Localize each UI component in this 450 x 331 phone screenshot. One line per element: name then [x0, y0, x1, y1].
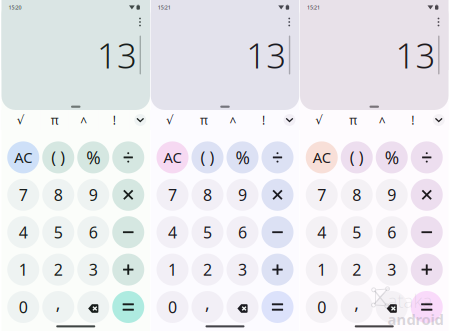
staticText: √ [315, 113, 323, 127]
button[interactable]: 5 [341, 216, 373, 248]
button[interactable]: 3 [77, 254, 109, 286]
button[interactable]: 4 [156, 216, 188, 248]
button[interactable]: 3 [376, 254, 408, 286]
button[interactable]: Show more functions [279, 110, 300, 130]
button[interactable]: 9 [376, 179, 408, 211]
staticText: 2 [352, 259, 361, 280]
button[interactable] [411, 216, 443, 248]
button[interactable] [77, 291, 109, 323]
staticText: 13 [396, 32, 436, 78]
button[interactable]: 0 [306, 291, 338, 323]
button[interactable] [261, 291, 293, 323]
button[interactable]: 8 [191, 179, 223, 211]
button[interactable] [261, 141, 293, 173]
button[interactable]: 7 [306, 179, 338, 211]
button[interactable]: 6 [376, 216, 408, 248]
button[interactable] [376, 291, 408, 323]
button[interactable]: % [77, 141, 109, 173]
button[interactable]: 8 [42, 179, 74, 211]
staticText: 4 [317, 222, 326, 243]
button[interactable]: ! [248, 110, 279, 130]
button[interactable]: 1 [306, 254, 338, 286]
button[interactable]: ^ [218, 110, 248, 130]
button[interactable]: 6 [77, 216, 109, 248]
button[interactable] [261, 254, 293, 286]
staticText: 3 [387, 259, 396, 280]
button[interactable] [112, 291, 144, 323]
button[interactable] [411, 179, 443, 211]
button[interactable]: ^ [69, 110, 99, 130]
button[interactable] [112, 254, 144, 286]
button[interactable]: π [41, 110, 69, 130]
staticText: 1 [317, 259, 326, 280]
button[interactable]: ! [397, 110, 428, 130]
button[interactable]: % [226, 141, 258, 173]
staticText: ataka [387, 288, 432, 313]
staticText: % [385, 146, 399, 169]
button[interactable]: 0 [7, 291, 39, 323]
button[interactable]: 4 [7, 216, 39, 248]
button[interactable]: ! [99, 110, 130, 130]
button[interactable]: √ [1, 110, 41, 130]
button[interactable]: 9 [226, 179, 258, 211]
button[interactable]: ( ) [341, 141, 373, 173]
button[interactable]: AC [306, 141, 338, 173]
button[interactable]: , [341, 291, 373, 323]
button[interactable]: More options [430, 15, 446, 29]
button[interactable] [112, 141, 144, 173]
button[interactable]: π [190, 110, 218, 130]
button[interactable]: ( ) [191, 141, 223, 173]
button[interactable]: 4 [306, 216, 338, 248]
button[interactable]: % [376, 141, 408, 173]
staticText: ^ [379, 114, 386, 129]
button[interactable]: 1 [7, 254, 39, 286]
staticText: 15:20 [8, 4, 21, 11]
button[interactable] [112, 179, 144, 211]
button[interactable]: π [339, 110, 367, 130]
button[interactable] [411, 254, 443, 286]
button[interactable]: , [191, 291, 223, 323]
button[interactable]: AC [156, 141, 188, 173]
button[interactable]: , [42, 291, 74, 323]
button[interactable]: 3 [226, 254, 258, 286]
button[interactable]: More options [132, 15, 148, 29]
staticText: 0 [168, 296, 177, 318]
button[interactable]: ^ [367, 110, 397, 130]
button[interactable]: More options [281, 15, 297, 29]
button[interactable] [112, 216, 144, 248]
staticText: 9 [89, 184, 98, 205]
button[interactable] [411, 141, 443, 173]
button[interactable]: √ [150, 110, 190, 130]
staticText: 7 [168, 184, 177, 205]
staticText: 15:21 [307, 4, 320, 11]
button[interactable]: 5 [191, 216, 223, 248]
button[interactable]: 7 [7, 179, 39, 211]
button[interactable]: Show more functions [130, 110, 151, 130]
button[interactable]: 0 [156, 291, 188, 323]
button[interactable]: 9 [77, 179, 109, 211]
button[interactable] [226, 291, 258, 323]
button[interactable]: 2 [42, 254, 74, 286]
button[interactable]: ( ) [42, 141, 74, 173]
button[interactable]: 2 [341, 254, 373, 286]
button[interactable]: 2 [191, 254, 223, 286]
staticText: 3 [238, 259, 247, 280]
staticText: , [56, 292, 61, 315]
button[interactable]: AC [7, 141, 39, 173]
button[interactable]: Show more functions [428, 110, 449, 130]
staticText: AC [163, 148, 181, 167]
button[interactable]: 8 [341, 179, 373, 211]
staticText: 3 [89, 259, 98, 280]
button[interactable]: 6 [226, 216, 258, 248]
staticText: ! [262, 112, 265, 128]
button[interactable]: 5 [42, 216, 74, 248]
staticText: 2 [203, 259, 212, 280]
button[interactable] [261, 216, 293, 248]
staticText: 13 [97, 32, 137, 78]
button[interactable] [411, 291, 443, 323]
button[interactable]: 7 [156, 179, 188, 211]
button[interactable]: √ [299, 110, 339, 130]
button[interactable]: 1 [156, 254, 188, 286]
staticText: ! [411, 112, 414, 128]
button[interactable] [261, 179, 293, 211]
